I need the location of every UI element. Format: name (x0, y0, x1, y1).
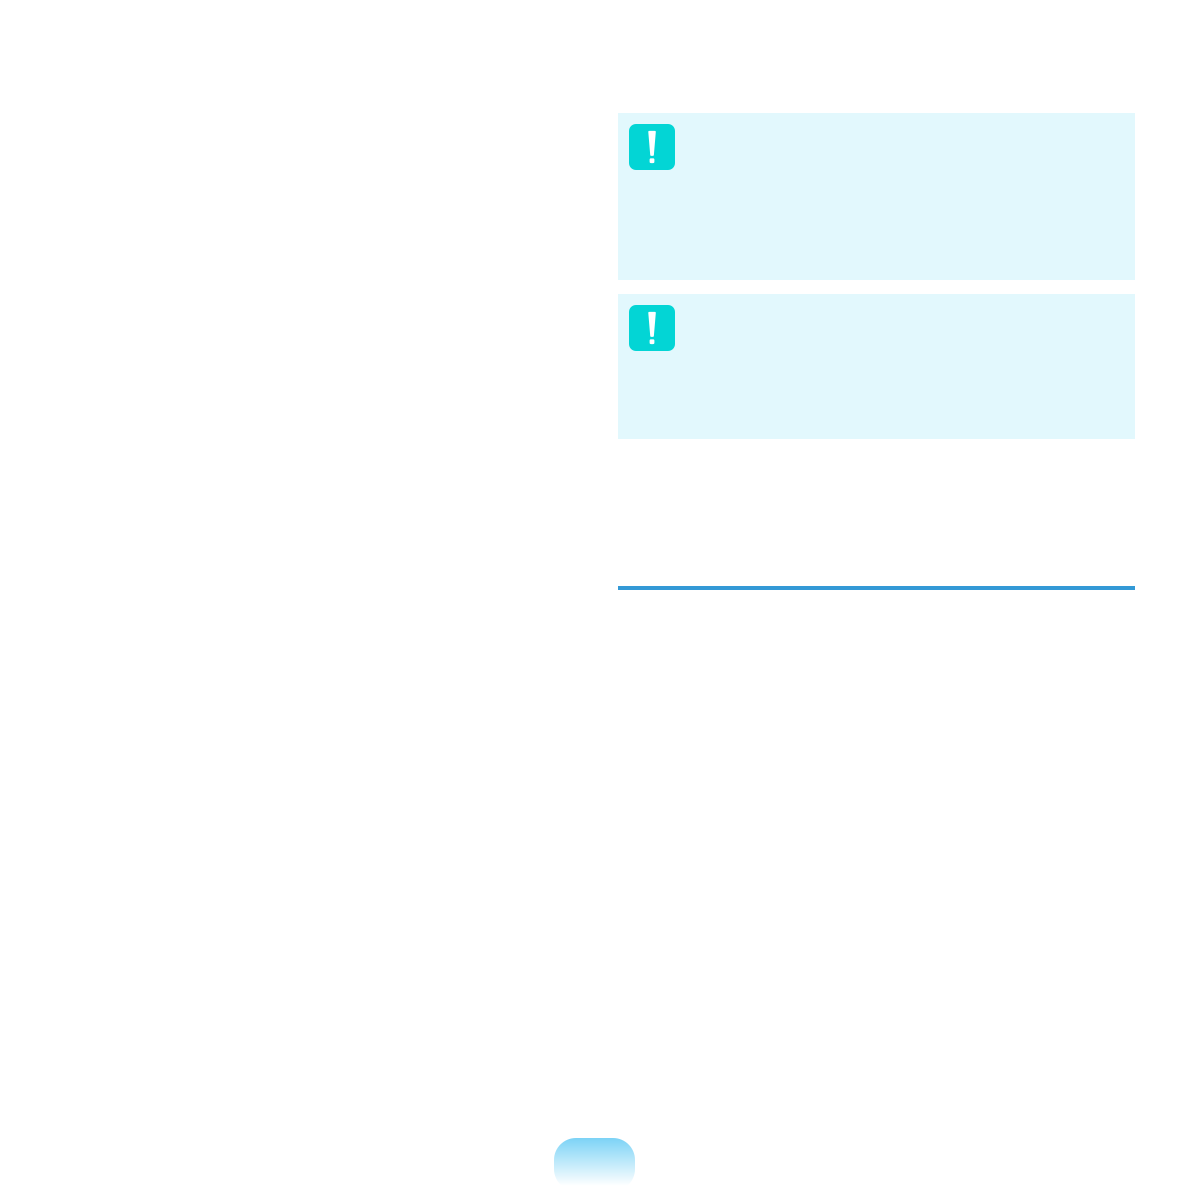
button[interactable]: Continue (554, 1138, 635, 1191)
button[interactable]: Information (618, 294, 1135, 439)
button[interactable]: Information (618, 113, 1135, 280)
